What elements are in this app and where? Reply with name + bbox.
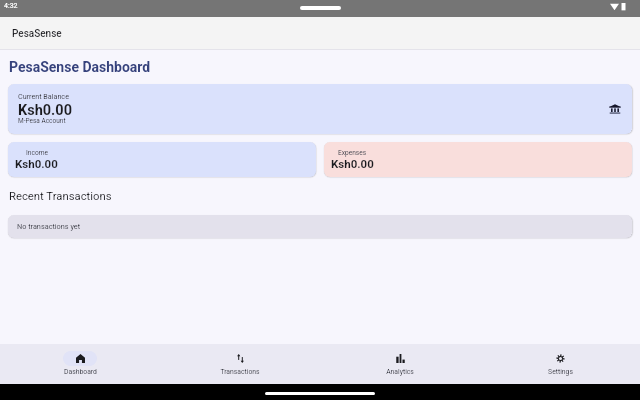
staticText: Ksh0.00 [15,157,58,170]
button[interactable]: No transactions yet [8,215,632,238]
staticText: Analytics [386,368,414,376]
staticText: Income [26,149,48,157]
button[interactable]: Expenses [324,142,632,177]
button[interactable]: Settings [480,344,640,382]
staticText: Current Balance [18,92,69,100]
staticText: Recent Transactions [9,190,112,203]
button[interactable]: Income [8,142,316,177]
button[interactable]: Current Balance [8,84,632,134]
staticText: Ksh0.00 [18,102,72,119]
staticText: PesaSense Dashboard [9,59,151,75]
button[interactable]: Dashboard [0,344,160,382]
button[interactable]: Transactions [160,344,320,382]
staticText: 4:32 [4,2,18,10]
staticText: PesaSense [12,28,62,40]
staticText: Expenses [338,149,367,157]
staticText: Settings [548,368,573,376]
other: Account balance [607,101,623,117]
staticText: Transactions [220,368,260,376]
staticText: Dashboard [64,368,97,376]
button[interactable]: Analytics [320,344,480,382]
staticText: No transactions yet [17,222,81,231]
staticText: M-Pesa Account [18,117,66,125]
staticText: Ksh0.00 [331,157,374,170]
